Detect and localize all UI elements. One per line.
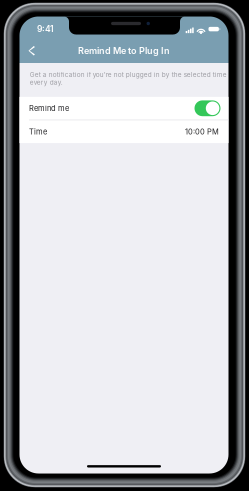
button[interactable]: Remind me <box>19 97 228 120</box>
staticText: Get a notification if you're not plugged… <box>30 71 227 86</box>
staticText: 10:00 PM <box>185 127 219 136</box>
staticText: Time <box>29 127 47 136</box>
staticText: Remind Me to Plug In <box>78 45 170 56</box>
staticText: 9:41 <box>37 24 54 34</box>
staticText: Remind me <box>29 104 69 113</box>
button[interactable]: Time <box>19 120 228 143</box>
button[interactable]: Back <box>19 41 45 61</box>
